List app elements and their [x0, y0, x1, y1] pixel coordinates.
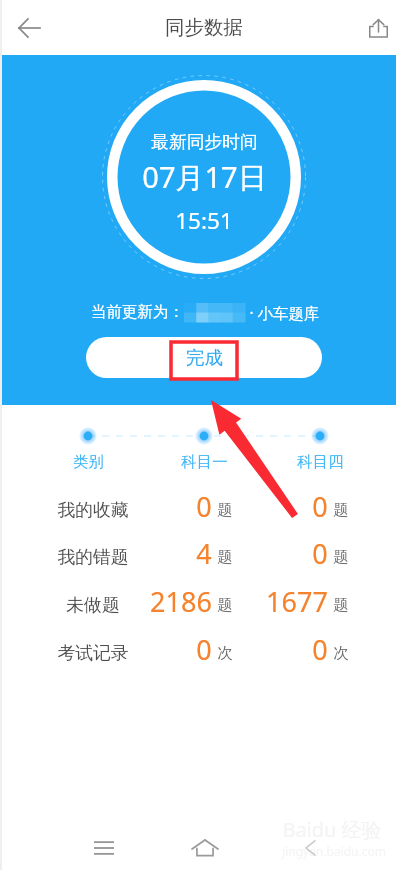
- staticText: Baidu 经验: [282, 816, 382, 843]
- staticText: 科目一: [181, 452, 228, 472]
- staticText: 题: [217, 547, 233, 567]
- staticText: 题: [217, 500, 233, 520]
- staticText: 次: [217, 643, 233, 663]
- staticText: 2186: [150, 583, 212, 617]
- staticText: jingyan.baidu.com: [282, 843, 386, 859]
- staticText: 题: [333, 595, 349, 615]
- button[interactable]: Share: [357, 7, 396, 49]
- button[interactable]: Recent apps: [83, 827, 125, 869]
- staticText: 科目四: [297, 452, 344, 472]
- staticText: 0: [196, 631, 212, 665]
- staticText: 0: [196, 488, 212, 522]
- staticText: 同步数据: [165, 15, 243, 40]
- staticText: 类别: [73, 452, 104, 472]
- button[interactable]: Home: [184, 827, 226, 869]
- staticText: 0: [312, 631, 328, 665]
- staticText: 我的错题: [57, 546, 129, 568]
- button[interactable]: Back: [8, 7, 50, 49]
- staticText: 1677: [266, 583, 328, 617]
- staticText: 次: [333, 643, 349, 663]
- staticText: 题: [333, 547, 349, 567]
- staticText: 题: [333, 500, 349, 520]
- staticText: 07月17日: [142, 157, 267, 197]
- staticText: 0: [312, 535, 328, 569]
- staticText: 未做题: [66, 594, 120, 616]
- staticText: 我的收藏: [57, 499, 129, 521]
- staticText: 4: [196, 535, 212, 569]
- staticText: · 小车题库: [245, 302, 320, 322]
- button[interactable]: Back: [290, 827, 332, 869]
- staticText: 当前更新为：: [91, 302, 184, 322]
- staticText: 完成: [186, 346, 223, 369]
- staticText: 题: [217, 595, 233, 615]
- staticText: 15:51: [175, 205, 233, 236]
- staticText: 0: [312, 488, 328, 522]
- button[interactable]: 完成: [86, 337, 322, 378]
- staticText: 最新同步时间: [151, 131, 258, 153]
- staticText: 考试记录: [57, 642, 129, 664]
